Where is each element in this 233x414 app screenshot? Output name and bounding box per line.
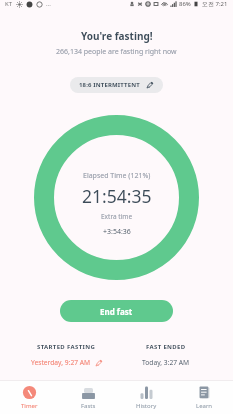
staticText: 86% xyxy=(179,0,191,8)
button[interactable]: 18:6 INTERMITTENT xyxy=(70,77,163,93)
staticText: STARTED FASTING xyxy=(37,343,96,351)
staticText: Elapsed Time (121%) xyxy=(83,171,151,181)
button[interactable]: Learn xyxy=(175,381,233,414)
staticText: FAST ENDED xyxy=(146,343,186,351)
staticText: Yesterday, 9:27 AM xyxy=(31,358,91,367)
staticText: KT xyxy=(5,0,13,8)
staticText: Fasts xyxy=(81,402,96,410)
staticText: ... xyxy=(46,0,51,8)
staticText: Extra time xyxy=(101,212,133,221)
staticText: You're fasting! xyxy=(81,29,153,43)
staticText: Learn xyxy=(196,402,213,410)
staticText: End fast xyxy=(100,306,133,317)
button[interactable]: End fast xyxy=(60,300,173,322)
staticText: History xyxy=(136,402,157,410)
staticText: 오전 7:21 xyxy=(202,0,228,8)
staticText: +3:54:36 xyxy=(103,227,131,237)
button[interactable]: Fasts xyxy=(59,381,117,414)
button[interactable]: Yesterday, 9:27 AM xyxy=(31,358,103,367)
button[interactable]: Timer xyxy=(0,381,59,414)
staticText: 266,134 people are fasting right now xyxy=(56,47,177,57)
staticText: Today, 3:27 AM xyxy=(142,358,190,367)
staticText: Timer xyxy=(21,402,38,410)
staticText: 18:6 INTERMITTENT xyxy=(79,81,140,89)
button[interactable]: History xyxy=(117,381,175,414)
staticText: 21:54:35 xyxy=(82,184,152,208)
